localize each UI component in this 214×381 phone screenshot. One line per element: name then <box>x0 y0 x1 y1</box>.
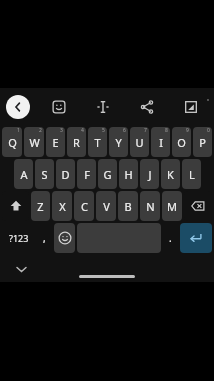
button[interactable]: R <box>67 127 86 157</box>
staticText: S <box>41 167 48 182</box>
staticText: 9 <box>186 127 189 134</box>
staticText: I <box>159 135 163 150</box>
button[interactable]: Shift <box>2 191 29 221</box>
button[interactable]: Y <box>109 127 128 157</box>
staticText: , <box>43 231 46 245</box>
staticText: E <box>52 135 59 150</box>
button[interactable]: Q <box>2 127 22 157</box>
button[interactable]: F <box>77 159 96 189</box>
button[interactable]: Backspace <box>184 191 212 221</box>
button[interactable]: S <box>35 159 54 189</box>
staticText: X <box>59 199 66 214</box>
button[interactable]: A <box>14 159 33 189</box>
staticText: 3 <box>60 127 63 134</box>
staticText: L <box>189 167 195 182</box>
button[interactable]: Back <box>6 95 30 119</box>
staticText: ?123 <box>9 232 29 244</box>
button[interactable]: V <box>96 191 116 221</box>
button[interactable]: E <box>46 127 65 157</box>
staticText: N <box>146 199 155 214</box>
button[interactable]: U <box>130 127 149 157</box>
staticText: D <box>61 167 70 182</box>
staticText: O <box>177 135 186 150</box>
button[interactable]: Enter <box>180 223 212 253</box>
button[interactable]: W <box>24 127 44 157</box>
button[interactable]: H <box>119 159 138 189</box>
button[interactable]: O <box>172 127 191 157</box>
staticText: A <box>20 167 28 182</box>
button[interactable]: M <box>162 191 182 221</box>
button[interactable]: Hide keyboard <box>14 262 28 276</box>
button[interactable]: Emoji <box>54 223 75 253</box>
button[interactable]: I <box>151 127 170 157</box>
staticText: G <box>103 167 112 182</box>
staticText: J <box>148 167 152 182</box>
button[interactable]: Clipboard <box>180 96 202 118</box>
staticText: W <box>29 135 40 150</box>
staticText: B <box>124 199 132 214</box>
staticText: T <box>94 135 101 150</box>
staticText: U <box>135 135 144 150</box>
staticText: K <box>167 167 174 182</box>
staticText: P <box>199 135 206 150</box>
staticText: Z <box>37 199 44 214</box>
button[interactable]: J <box>140 159 159 189</box>
staticText: 8 <box>165 127 168 134</box>
button[interactable]: G <box>98 159 117 189</box>
button[interactable]: P <box>193 127 212 157</box>
button[interactable]: L <box>182 159 201 189</box>
button[interactable]: T <box>88 127 107 157</box>
button[interactable]: B <box>118 191 138 221</box>
staticText: Q <box>8 135 17 150</box>
button[interactable]: D <box>56 159 75 189</box>
button[interactable]: N <box>140 191 160 221</box>
staticText: 4 <box>81 127 84 134</box>
staticText: . <box>169 231 172 245</box>
staticText: 7 <box>144 127 147 134</box>
staticText: C <box>81 199 88 214</box>
staticText: Y <box>115 135 122 150</box>
button[interactable]: Share <box>136 96 158 118</box>
button[interactable]: C <box>74 191 94 221</box>
button[interactable]: . <box>162 223 179 253</box>
button[interactable]: Text editing <box>92 96 114 118</box>
staticText: 1 <box>17 127 20 134</box>
staticText: 5 <box>102 127 105 134</box>
staticText: M <box>167 199 177 214</box>
button[interactable]: , <box>36 223 53 253</box>
staticText: V <box>103 199 110 214</box>
button[interactable]: Z <box>31 191 50 221</box>
button[interactable]: K <box>161 159 180 189</box>
staticText: 0 <box>207 127 210 134</box>
button[interactable]: X <box>52 191 72 221</box>
staticText: 2 <box>39 127 42 134</box>
staticText: 6 <box>123 127 126 134</box>
staticText: F <box>84 167 90 182</box>
staticText: R <box>73 135 80 150</box>
button[interactable]: Stickers <box>48 96 70 118</box>
staticText: H <box>124 167 133 182</box>
button[interactable]: ?123 <box>1 223 36 253</box>
